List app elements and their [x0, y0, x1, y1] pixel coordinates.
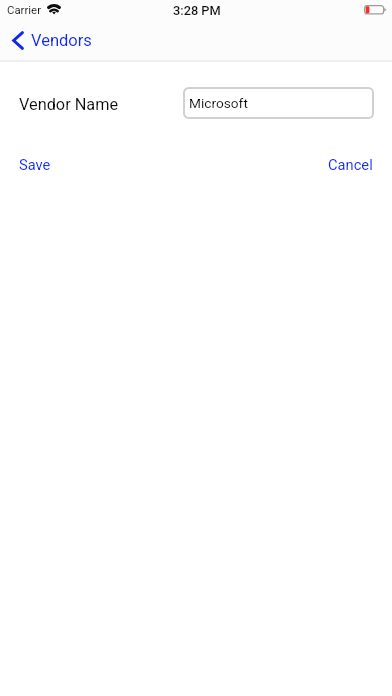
staticText: Cancel: [328, 156, 373, 173]
staticText: Vendor Name: [19, 95, 119, 114]
staticText: Vendors: [31, 31, 92, 50]
button[interactable]: Back: [0, 25, 102, 56]
staticText: Carrier: [7, 3, 41, 16]
staticText: Save: [19, 156, 51, 173]
other: Back: [12, 31, 24, 50]
button[interactable]: Microsoft: [183, 87, 374, 119]
button[interactable]: Save: [8, 149, 62, 179]
button[interactable]: Cancel: [315, 149, 385, 179]
staticText: Microsoft: [189, 95, 248, 111]
staticText: 3:28 PM: [173, 3, 221, 18]
